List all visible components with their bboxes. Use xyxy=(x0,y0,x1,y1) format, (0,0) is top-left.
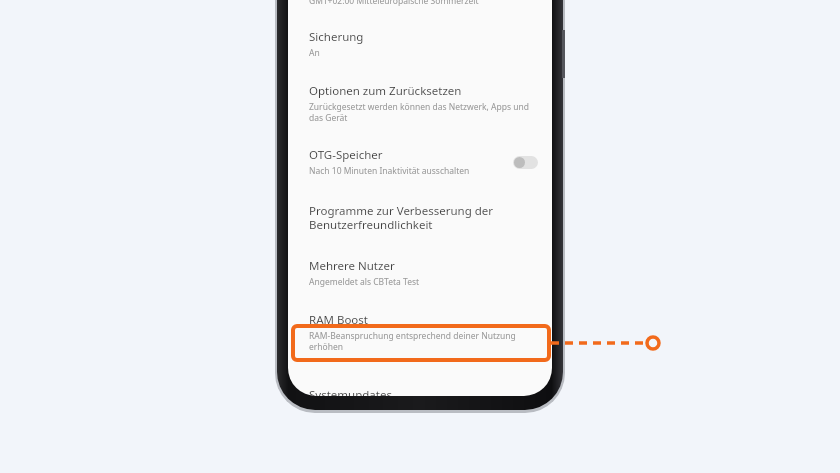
staticText: OTG-Speicher xyxy=(309,147,383,163)
staticText: Angemeldet als CBTeta Test xyxy=(309,276,420,288)
staticText: Systemupdates xyxy=(309,387,392,396)
staticText: RAM-Beanspruchung entsprechend deiner Nu… xyxy=(309,330,538,352)
button[interactable]: OTG Speicher Schalter xyxy=(513,156,538,169)
button[interactable]: Programme zur Verbesserung der Benutzerf… xyxy=(288,203,552,232)
button[interactable]: Systemupdates hervorgehoben xyxy=(291,324,551,362)
staticText: An xyxy=(309,47,320,59)
staticText: Zurückgesetzt werden können das Netzwerk… xyxy=(309,101,538,123)
staticText: Mehrere Nutzer xyxy=(309,258,395,274)
button[interactable]: Sicherung xyxy=(288,29,552,59)
button[interactable]: Systemupdates xyxy=(288,387,552,396)
staticText: GMT+02:00 Mitteleuropäische Sommerzeit xyxy=(309,0,479,7)
staticText: Sicherung xyxy=(309,29,364,45)
staticText: Nach 10 Minuten Inaktivität ausschalten xyxy=(309,165,470,177)
button[interactable]: OTG-Speicher xyxy=(288,147,552,177)
button[interactable]: Mehrere Nutzer xyxy=(288,258,552,288)
button[interactable]: RAM Boost xyxy=(288,312,552,352)
staticText: Programme zur Verbesserung der Benutzerf… xyxy=(309,203,538,232)
staticText: Optionen zum Zurücksetzen xyxy=(309,83,462,99)
staticText: RAM Boost xyxy=(309,312,368,328)
button[interactable]: Optionen zum Zurücksetzen xyxy=(288,83,552,123)
